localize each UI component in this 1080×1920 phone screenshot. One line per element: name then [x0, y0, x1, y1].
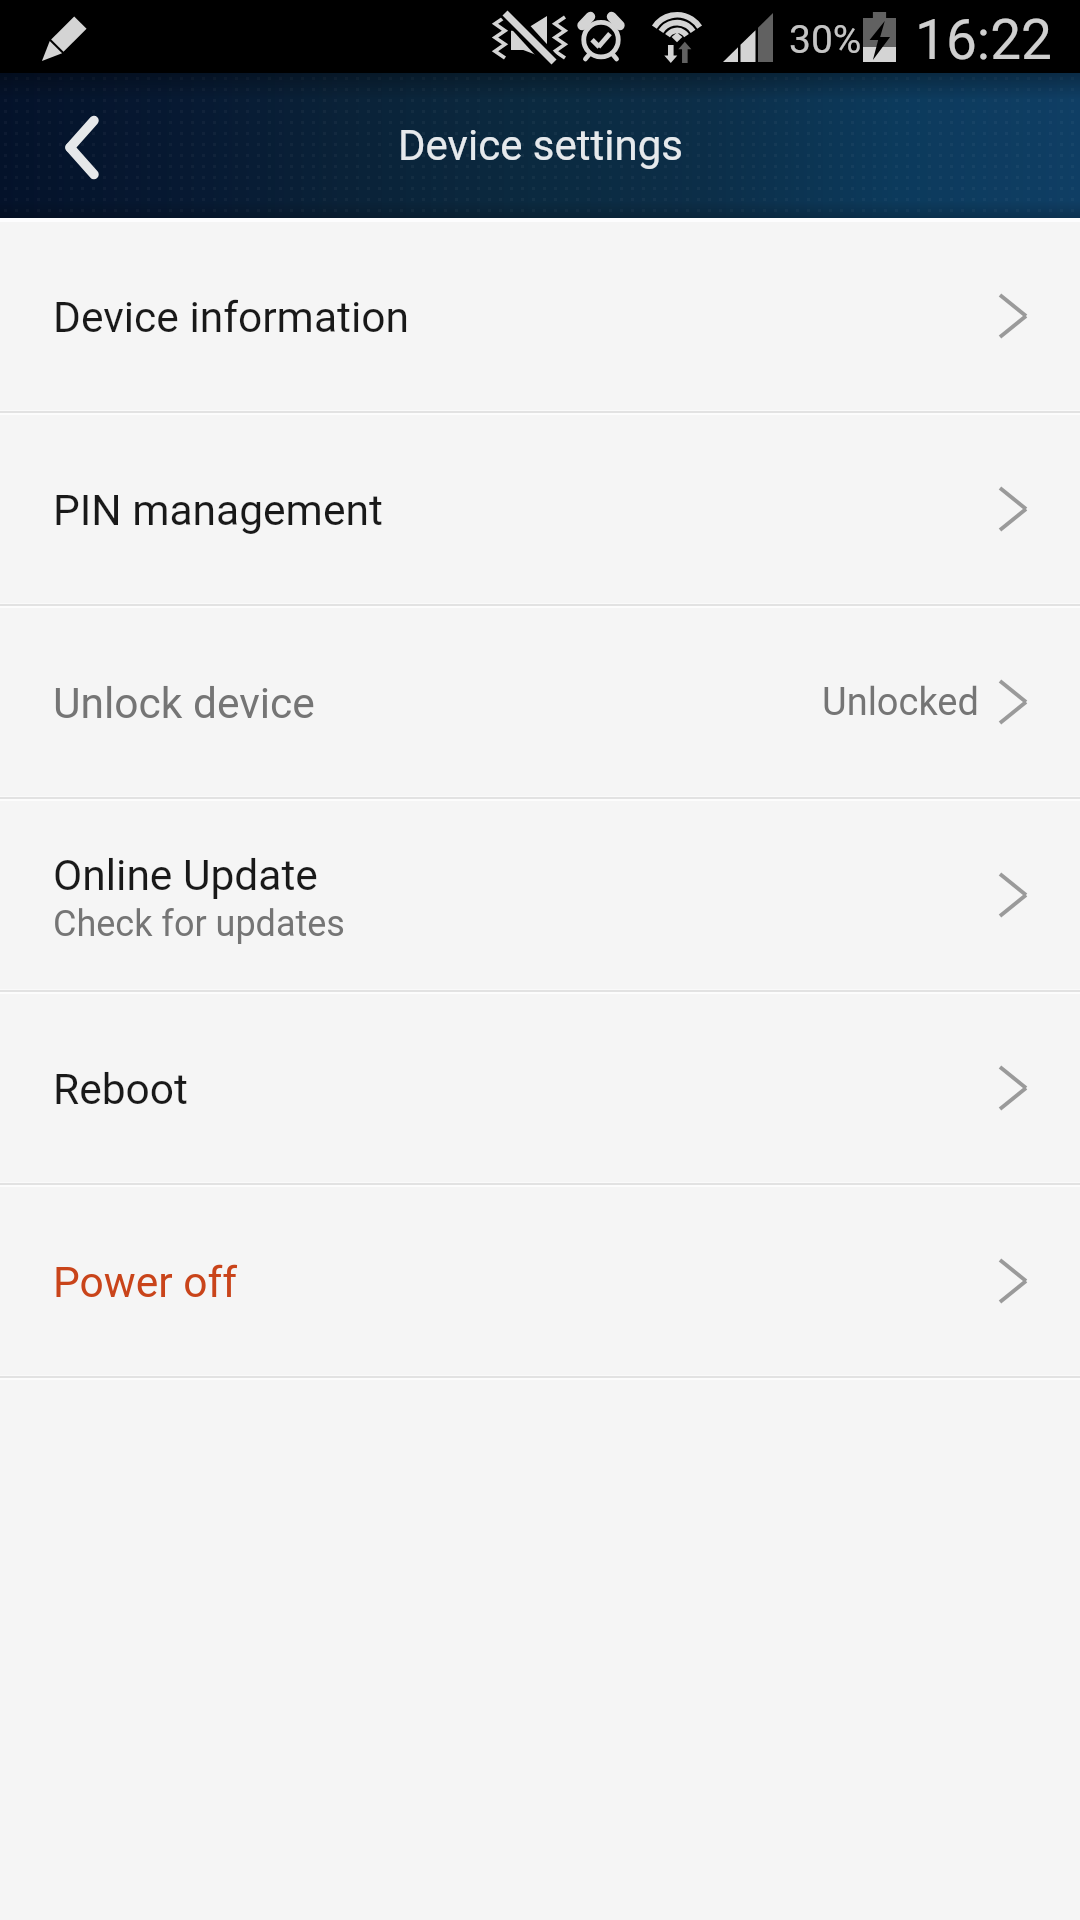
button[interactable]: Unlock device: [0, 608, 1080, 796]
staticText: Device settings: [398, 121, 683, 170]
staticText: Device information: [53, 293, 409, 343]
button[interactable]: Reboot: [0, 994, 1080, 1182]
button[interactable]: Online Update: [0, 801, 1080, 989]
button[interactable]: PIN management: [0, 415, 1080, 603]
button[interactable]: Device information: [0, 222, 1080, 410]
button[interactable]: Back: [0, 73, 150, 218]
staticText: 30%: [789, 17, 862, 63]
staticText: Power off: [53, 1258, 237, 1308]
staticText: Online Update: [53, 851, 318, 901]
button[interactable]: Power off: [0, 1187, 1080, 1375]
staticText: Reboot: [53, 1065, 188, 1115]
staticText: 16:22: [915, 8, 1052, 72]
staticText: Check for updates: [53, 903, 345, 945]
staticText: PIN management: [53, 486, 383, 536]
staticText: Unlock device: [53, 679, 315, 729]
staticText: Unlocked: [822, 680, 979, 725]
